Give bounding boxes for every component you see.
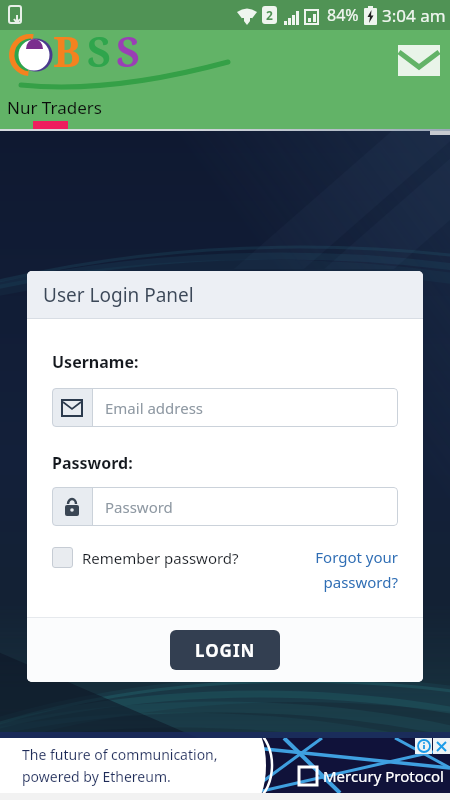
button[interactable]: LOGIN: [170, 630, 280, 670]
staticText: The future of communication,: [22, 745, 218, 764]
button[interactable]: Email address: [52, 388, 398, 427]
staticText: 84%: [327, 4, 359, 26]
staticText: powered by Ethereum.: [22, 767, 171, 786]
staticText: B: [53, 23, 81, 79]
button[interactable]: Forgot your password?: [315, 547, 398, 592]
staticText: User Login Panel: [43, 282, 194, 308]
staticText: S: [87, 23, 111, 79]
staticText: 3:04 am: [382, 4, 446, 27]
staticText: LOGIN: [195, 639, 256, 662]
staticText: Email address: [105, 398, 204, 418]
staticText: Password:: [52, 452, 133, 474]
staticText: 2: [266, 7, 273, 23]
staticText: Nur Traders: [7, 96, 102, 119]
button[interactable]: Password: [52, 487, 398, 526]
button[interactable]: The future of communication,: [0, 738, 450, 793]
staticText: S: [116, 23, 140, 79]
staticText: Password: [105, 497, 173, 517]
staticText: Username:: [52, 351, 139, 373]
staticText: Remember password?: [82, 548, 239, 568]
staticText: Mercury Protocol: [323, 766, 444, 786]
button[interactable]: [398, 45, 440, 76]
button[interactable]: Remember password?: [52, 547, 239, 568]
